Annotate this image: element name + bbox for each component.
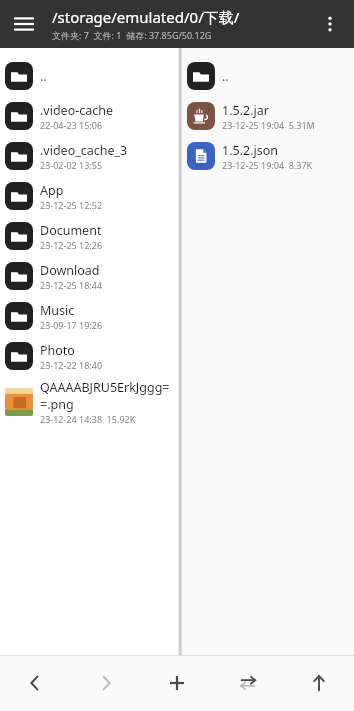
staticText: 23-12-24 14:38 15.92K: [40, 413, 136, 425]
staticText: QAAAABJRU5ErkJggg==.png: [40, 379, 174, 413]
staticText: 23-09-17 19:26: [40, 319, 103, 331]
staticText: 23-12-25 19:04 8.37K: [222, 159, 313, 171]
button[interactable]: ..: [0, 56, 178, 96]
button[interactable]: 1.5.2.jar: [182, 96, 354, 136]
button[interactable]: Document: [0, 216, 178, 256]
staticText: 23-12-22 18:40: [40, 359, 103, 371]
button[interactable]: More options: [312, 6, 348, 42]
staticText: .video-cache: [40, 102, 114, 119]
staticText: /storage/emulated/0/下载/: [52, 7, 240, 27]
staticText: Document: [40, 222, 102, 239]
staticText: App: [40, 182, 64, 199]
button[interactable]: .video-cache: [0, 96, 178, 136]
staticText: 23-12-25 18:44: [40, 279, 103, 291]
staticText: 23-02-02 13:55: [40, 159, 103, 171]
staticText: 22-04-23 15:06: [40, 119, 103, 131]
button[interactable]: Menu: [6, 6, 42, 42]
staticText: ..: [222, 68, 229, 85]
staticText: 1.5.2.json: [222, 142, 279, 159]
button[interactable]: Download: [0, 256, 178, 296]
staticText: Photo: [40, 342, 75, 359]
staticText: Music: [40, 302, 75, 319]
button[interactable]: Back: [0, 655, 70, 711]
button[interactable]: QAAAABJRU5ErkJggg==.png: [0, 376, 178, 428]
staticText: ..: [40, 68, 47, 85]
button[interactable]: Add: [141, 655, 212, 711]
staticText: 23-12-25 19:04 5.31M: [222, 119, 315, 131]
button[interactable]: Music: [0, 296, 178, 336]
staticText: 文件夹: 7 文件: 1 储存: 37.85G/50.12G: [52, 29, 212, 41]
button[interactable]: Photo: [0, 336, 178, 376]
staticText: 1.5.2.jar: [222, 102, 269, 119]
staticText: 23-12-25 12:52: [40, 199, 103, 211]
button[interactable]: Transfer: [212, 655, 283, 711]
button[interactable]: ..: [182, 56, 354, 96]
button[interactable]: App: [0, 176, 178, 216]
button[interactable]: Forward: [70, 655, 141, 711]
button[interactable]: .video_cache_3: [0, 136, 178, 176]
staticText: .video_cache_3: [40, 142, 128, 159]
button[interactable]: 1.5.2.json: [182, 136, 354, 176]
button[interactable]: Up: [283, 655, 354, 711]
staticText: 23-12-25 12:26: [40, 239, 103, 251]
staticText: Download: [40, 262, 100, 279]
